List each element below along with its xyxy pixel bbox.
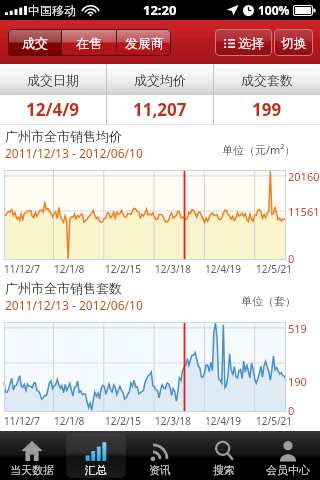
staticText: 12/4/19: [205, 262, 242, 276]
button[interactable]: Member: [258, 433, 318, 478]
staticText: 会员中心: [266, 463, 310, 477]
staticText: 12/4/9: [26, 98, 80, 121]
staticText: 12/4/19: [205, 414, 242, 428]
staticText: 资讯: [149, 463, 171, 477]
staticText: 519: [288, 321, 307, 336]
staticText: 11/12/7: [4, 414, 41, 428]
staticText: 发展商: [125, 35, 164, 51]
staticText: 单位（元/m²）: [222, 142, 296, 157]
staticText: 在售: [76, 35, 102, 51]
staticText: 成交日期: [27, 72, 79, 88]
button[interactable]: Today data: [2, 433, 62, 478]
button[interactable]: 成交日期: [0, 64, 106, 95]
button[interactable]: 成交均价: [107, 64, 213, 95]
staticText: 成交套数: [241, 72, 293, 88]
button[interactable]: 在售: [62, 29, 116, 56]
staticText: 中国移动: [28, 3, 76, 18]
staticText: 广州市全市销售均价: [5, 128, 122, 144]
staticText: 汇总: [85, 463, 107, 477]
button[interactable]: News: [130, 433, 190, 478]
staticText: 0: [288, 251, 295, 266]
button[interactable]: 选择: [215, 29, 272, 56]
staticText: 成交均价: [134, 72, 186, 88]
staticText: 选择: [238, 35, 264, 51]
button[interactable]: 成交套数: [214, 64, 320, 95]
staticText: 11,207: [133, 98, 187, 121]
staticText: 11/12/7: [4, 262, 41, 276]
staticText: 切换: [281, 35, 307, 51]
staticText: 20160: [288, 169, 320, 184]
staticText: 12/1/8: [54, 262, 85, 276]
staticText: 100%: [258, 2, 290, 18]
staticText: 12/3/18: [155, 262, 192, 276]
staticText: 成交: [22, 35, 48, 51]
staticText: 当天数据: [10, 463, 54, 477]
staticText: 2011/12/13 - 2012/06/10: [5, 145, 143, 161]
button[interactable]: 切换: [274, 29, 313, 56]
staticText: 12/2/15: [105, 262, 142, 276]
button[interactable]: Summary: [66, 433, 126, 478]
staticText: 12:20: [143, 1, 177, 19]
staticText: 2011/12/13 - 2012/06/10: [5, 297, 143, 313]
staticText: 190: [288, 374, 307, 389]
staticText: 12/5/21: [256, 414, 293, 428]
button[interactable]: 发展商: [117, 29, 171, 56]
staticText: 广州市全市销售套数: [5, 280, 122, 296]
staticText: 单位（套）: [241, 294, 296, 308]
staticText: 搜索: [213, 463, 235, 477]
staticText: 12/2/15: [105, 414, 142, 428]
staticText: 12/3/18: [155, 414, 192, 428]
staticText: 11561: [288, 204, 320, 219]
staticText: 12/1/8: [54, 414, 85, 428]
button[interactable]: 成交: [8, 29, 61, 56]
staticText: 0: [288, 403, 295, 418]
button[interactable]: Search: [194, 433, 254, 478]
staticText: 199: [252, 98, 282, 121]
staticText: 12/5/21: [256, 262, 293, 276]
